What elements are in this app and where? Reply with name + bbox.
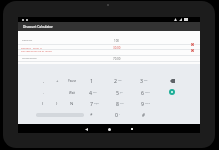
staticText: 4 <box>89 89 92 96</box>
button[interactable]: 4 <box>82 87 104 98</box>
button[interactable]: Clear <box>190 48 195 53</box>
staticText: Wait <box>69 91 76 95</box>
staticText: GHI <box>93 91 97 94</box>
staticText: . <box>43 90 45 96</box>
staticText: , <box>43 78 45 84</box>
staticText: Price after discount <box>22 57 37 59</box>
button[interactable]: Back <box>82 125 90 133</box>
staticText: ABC <box>118 79 122 82</box>
button[interactable]: 3 <box>133 75 155 86</box>
button[interactable]: ( <box>32 98 54 109</box>
staticText: Discount: 30.00 % <box>21 47 42 50</box>
staticText: ) <box>56 101 58 107</box>
button[interactable]: Home <box>105 125 113 133</box>
staticText: 9 <box>141 100 144 107</box>
button[interactable]: Backspace <box>166 75 178 86</box>
staticText: 1 <box>90 77 93 84</box>
staticText: Discount Calculator <box>23 25 53 29</box>
staticText: 0 <box>115 111 118 118</box>
button[interactable]: ) <box>46 98 68 109</box>
button[interactable]: 1 <box>80 75 102 86</box>
button[interactable]: * <box>80 109 102 120</box>
button[interactable]: 2 <box>107 75 129 86</box>
button[interactable]: 5 <box>108 87 130 98</box>
staticText: 30.00 <box>113 46 121 50</box>
staticText: # <box>142 112 145 118</box>
button[interactable]: Recent apps <box>128 125 136 133</box>
staticText: MNO <box>145 91 150 94</box>
staticText: 3 <box>140 77 143 84</box>
staticText: 7 <box>90 100 93 107</box>
button[interactable]: N <box>61 98 83 109</box>
staticText: TUV <box>120 102 124 105</box>
staticText: N <box>70 101 74 107</box>
staticText: you save 30.00 out of 100.00 <box>21 50 52 53</box>
staticText: Original price <box>22 39 33 41</box>
button[interactable]: 0 <box>107 109 129 120</box>
staticText: 5 <box>116 89 119 96</box>
button[interactable]: 7 <box>83 98 105 109</box>
staticText: 70.00 <box>113 57 121 61</box>
staticText: JKL <box>120 91 123 94</box>
staticText: 100 <box>114 39 119 43</box>
button[interactable]: Call <box>166 86 178 98</box>
staticText: PQRS <box>94 102 99 105</box>
staticText: 6 <box>141 89 144 96</box>
staticText: WXYZ <box>145 102 151 105</box>
button[interactable]: 8 <box>109 98 131 109</box>
staticText: + <box>119 113 121 116</box>
staticText: DEF <box>144 79 148 82</box>
button[interactable]: 6 <box>134 87 156 98</box>
staticText: Pause <box>68 79 77 83</box>
staticText: + <box>56 78 59 84</box>
staticText: * <box>90 112 93 118</box>
button[interactable]: Pause <box>61 75 83 86</box>
staticText: ( <box>42 101 44 107</box>
button[interactable]: Wait <box>61 87 83 98</box>
button[interactable]: + <box>46 75 68 86</box>
button[interactable]: 9 <box>135 98 157 109</box>
staticText: 2 <box>114 77 117 84</box>
staticText: 8 <box>116 100 119 107</box>
button[interactable]: # <box>132 109 154 120</box>
button[interactable]: Clear <box>190 42 195 47</box>
